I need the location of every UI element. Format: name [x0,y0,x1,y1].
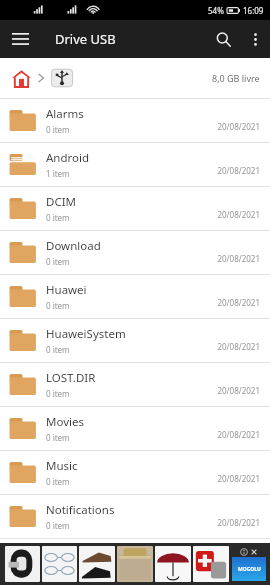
button[interactable]: LOST.DIR [0,363,270,407]
staticText: 20/08/2021 [217,561,260,572]
button[interactable]: Download [0,231,270,275]
staticText: 20/08/2021 [217,209,260,220]
button[interactable]: Home [8,65,34,91]
button[interactable]: Android [0,143,270,187]
staticText: Download [46,238,101,254]
staticText: 16:09 [243,5,264,16]
button[interactable]: Alarms [0,99,270,143]
staticText: 20/08/2021 [217,297,260,308]
staticText: Alarms [46,106,84,122]
staticText: Music [46,458,78,474]
button[interactable]: DCIM [0,187,270,231]
staticText: 8,0 GB livre [212,72,260,84]
staticText: 1 item [46,168,70,179]
staticText: 0 item [46,476,70,487]
button[interactable]: Open navigation menu [4,23,36,55]
staticText: Android [46,150,90,166]
staticText: 0 item [46,388,70,399]
button[interactable]: HuaweiSystem [0,319,270,363]
staticText: 20/08/2021 [217,473,260,484]
staticText: 0 item [46,432,70,443]
staticText: 0 item [46,344,70,355]
staticText: 20/08/2021 [217,517,260,528]
staticText: 20/08/2021 [217,341,260,352]
staticText: DCIM [46,194,76,210]
staticText: 54% [208,5,224,16]
button[interactable]: Search [206,22,240,56]
staticText: 20/08/2021 [217,429,260,440]
staticText: Movies [46,414,84,430]
staticText: HuaweiSystem [46,326,126,342]
button[interactable]: Notifications [0,495,270,539]
staticText: 20/08/2021 [217,253,260,264]
staticText: 20/08/2021 [217,385,260,396]
staticText: 20/08/2021 [217,121,260,132]
button[interactable]: More options [240,24,270,54]
staticText: MOGOLU [238,566,261,573]
staticText: 0 item [46,300,70,311]
staticText: 0 item [46,520,70,531]
button[interactable]: USB drive [50,67,74,89]
staticText: 0 item [46,212,70,223]
button[interactable]: Huawei [0,275,270,319]
staticText: 0 item [46,124,70,135]
button[interactable]: Movies [0,407,270,451]
staticText: 0 item [46,256,70,267]
staticText: 20/08/2021 [217,165,260,176]
button[interactable]: Music [0,451,270,495]
staticText: Drive USB [55,30,116,48]
staticText: 0 item [46,564,70,575]
staticText: Huawei [46,282,87,298]
staticText: LOST.DIR [46,370,96,386]
button[interactable]: Pictures [0,539,270,583]
staticText: Notifications [46,502,115,518]
button[interactable]: Advertisement [0,543,270,585]
staticText: Pictures [46,546,90,562]
